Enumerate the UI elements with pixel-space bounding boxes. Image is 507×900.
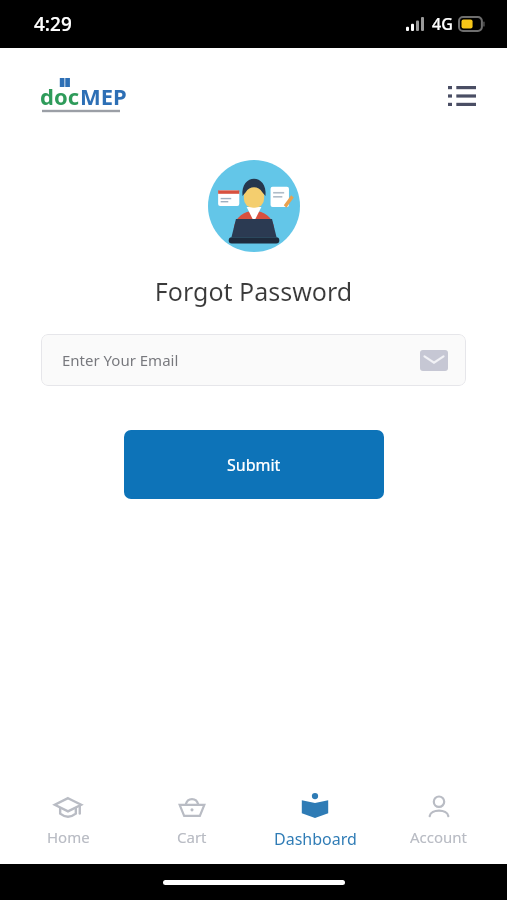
staticText: Forgot Password [0, 274, 507, 308]
staticText: 4:29 [34, 11, 72, 37]
button[interactable]: Account [384, 790, 494, 853]
staticText: MEP [80, 81, 127, 111]
button[interactable]: Menu [445, 79, 479, 113]
button[interactable]: Home [13, 790, 123, 853]
staticText: Account [410, 827, 468, 847]
staticText: Enter Your Email [62, 350, 179, 370]
staticText: Dashboard [274, 828, 357, 850]
button[interactable]: Enter Your Email [41, 334, 466, 386]
staticText: doc [40, 81, 80, 111]
staticText: Cart [177, 827, 207, 847]
staticText: Submit [227, 454, 281, 476]
button[interactable]: Dashboard [260, 787, 370, 856]
button[interactable]: Submit [124, 430, 384, 499]
staticText: Home [47, 827, 90, 847]
staticText: 4G [432, 13, 453, 35]
button[interactable]: Cart [137, 790, 247, 853]
